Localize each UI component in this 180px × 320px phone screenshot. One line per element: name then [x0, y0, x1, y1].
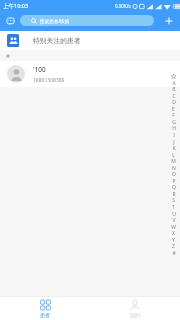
- staticText: Q: [172, 184, 176, 191]
- staticText: A: [172, 80, 176, 87]
- staticText: V: [172, 217, 176, 224]
- button[interactable]: Alphabet index: [167, 50, 180, 296]
- staticText: E: [172, 106, 175, 113]
- staticText: B: [172, 86, 176, 93]
- staticText: X: [172, 230, 175, 237]
- staticText: 搜索患者/疾病: [40, 18, 70, 24]
- staticText: Y: [172, 237, 175, 244]
- staticText: J: [173, 139, 175, 146]
- staticText: K: [172, 145, 176, 152]
- button[interactable]: 我的: [90, 297, 180, 320]
- button[interactable]: 特别关注的患者: [7, 31, 175, 50]
- staticText: C: [172, 93, 176, 100]
- staticText: #: [6, 52, 10, 60]
- staticText: 18801308389: [33, 77, 65, 84]
- staticText: T: [172, 204, 175, 211]
- staticText: N: [172, 165, 176, 172]
- staticText: D: [172, 99, 176, 106]
- button[interactable]: '100: [7, 61, 173, 87]
- button[interactable]: Messages: [4, 15, 16, 27]
- staticText: M: [171, 158, 176, 165]
- button[interactable]: 搜索患者/疾病: [20, 15, 154, 26]
- staticText: '100: [33, 65, 46, 74]
- staticText: 特别关注的患者: [33, 36, 81, 45]
- staticText: S: [172, 197, 175, 204]
- staticText: I: [173, 132, 175, 139]
- staticText: #: [172, 250, 176, 257]
- button[interactable]: Add: [162, 14, 176, 28]
- staticText: 患者: [40, 312, 50, 318]
- button[interactable]: 患者: [0, 297, 90, 320]
- staticText: H: [172, 125, 176, 132]
- staticText: 0.00K/s: [115, 3, 131, 9]
- staticText: O: [172, 171, 176, 178]
- staticText: 我的: [130, 312, 140, 318]
- staticText: P: [172, 178, 176, 185]
- staticText: L: [172, 152, 175, 159]
- staticText: Z: [172, 243, 175, 250]
- staticText: U: [172, 211, 176, 218]
- staticText: R: [172, 191, 176, 198]
- staticText: W: [171, 224, 176, 231]
- staticText: F: [172, 112, 175, 119]
- staticText: G: [172, 119, 176, 126]
- staticText: 上午10:03: [3, 2, 29, 10]
